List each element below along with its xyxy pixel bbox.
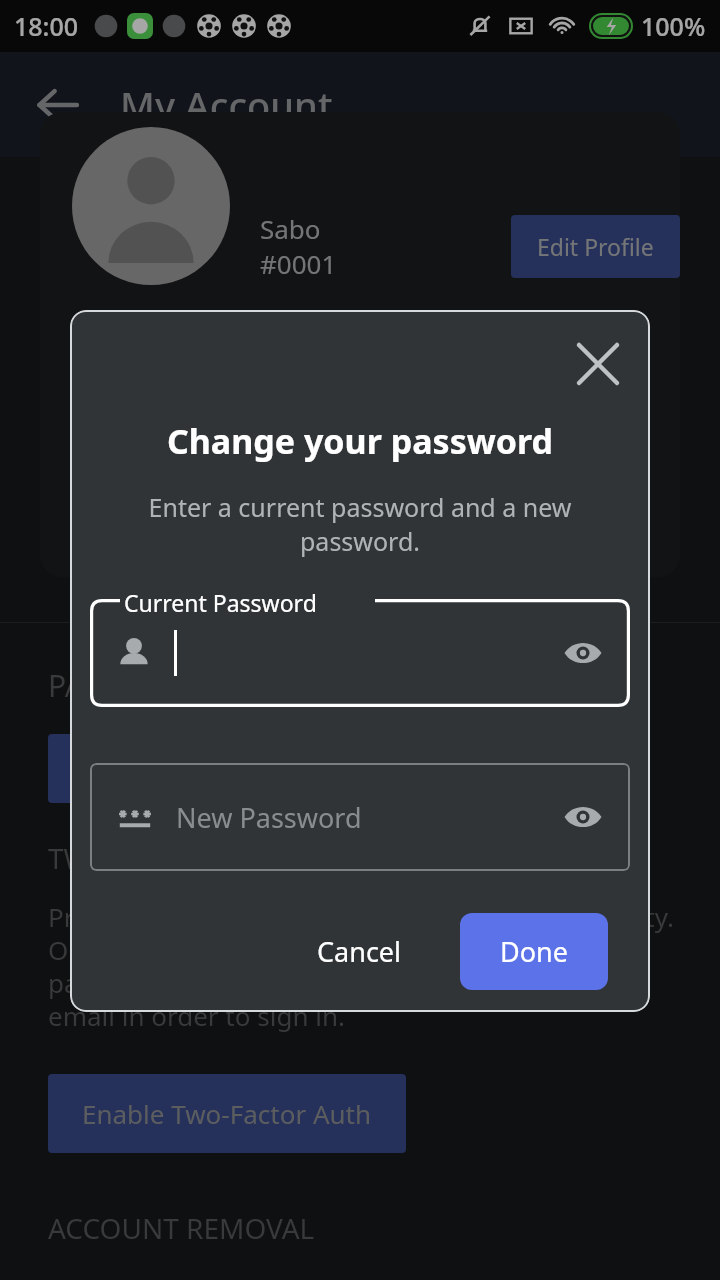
staticText: Change your password	[70, 418, 650, 464]
button[interactable]: Edit Profile	[511, 215, 680, 278]
staticText: Cancel	[317, 933, 402, 970]
button[interactable]: Show password	[560, 630, 606, 676]
button[interactable]: Show password	[90, 599, 630, 707]
staticText: Enable Two-Factor Auth	[82, 1096, 372, 1131]
staticText: #0001	[260, 246, 337, 281]
staticText: 18:00	[14, 9, 79, 43]
button[interactable]: Show new password	[560, 794, 606, 840]
staticText: New Password	[176, 799, 362, 836]
staticText: Change Password	[78, 752, 280, 785]
staticText: 100%	[641, 9, 706, 43]
button[interactable]: Enable Two-Factor Auth	[48, 1074, 406, 1153]
staticText: Sabo	[260, 211, 321, 246]
staticText: Protect your account with an extra layer…	[48, 899, 680, 1034]
button[interactable]: Change Password	[48, 734, 310, 803]
staticText: My Account	[120, 79, 333, 131]
staticText: TWO-FACTOR AUTHENTICATION	[48, 839, 470, 877]
button[interactable]: Done	[460, 913, 608, 990]
staticText: PASSWORD	[48, 665, 209, 706]
staticText: Edit Profile	[537, 231, 654, 262]
button[interactable]: Back	[28, 75, 88, 135]
staticText: Current Password	[124, 587, 317, 618]
button[interactable]: Cancel	[293, 917, 426, 986]
button[interactable]: Close	[570, 336, 626, 392]
staticText: ACCOUNT REMOVAL	[48, 1209, 315, 1247]
button[interactable]: New Password	[90, 763, 630, 871]
staticText: Done	[500, 933, 568, 970]
staticText: Enter a current password and a new passw…	[116, 490, 604, 559]
